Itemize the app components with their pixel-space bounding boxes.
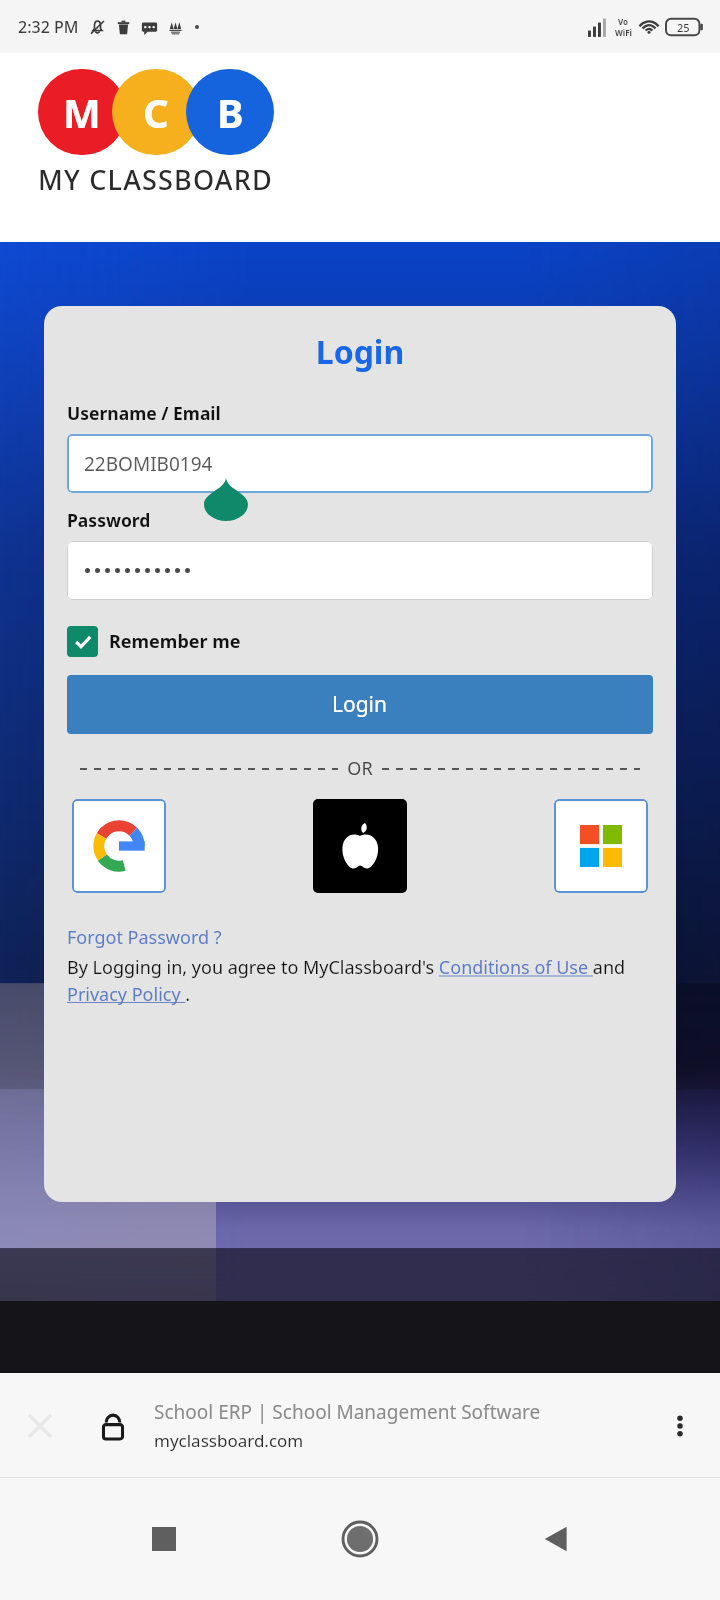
staticText: OR — [338, 756, 382, 781]
button[interactable]: Remember me — [67, 626, 241, 657]
staticText: 2:32 PM — [18, 16, 79, 38]
button[interactable]: 22BOMIB0194 — [67, 434, 653, 493]
staticText: M — [63, 85, 101, 139]
button[interactable]: Home — [328, 1507, 392, 1571]
staticText: Remember me — [109, 629, 241, 654]
button[interactable]: Sign in with Microsoft — [554, 799, 648, 893]
staticText: Vo — [618, 16, 629, 27]
staticText: 22BOMIB0194 — [84, 451, 213, 477]
button[interactable]: More options — [654, 1400, 706, 1452]
button[interactable]: Forgot Password ? — [67, 925, 222, 950]
staticText: Login — [332, 690, 388, 719]
staticText: School ERP | School Management Software — [154, 1399, 541, 1425]
staticText: Password — [67, 508, 151, 532]
button[interactable]: Recents — [132, 1507, 196, 1571]
button[interactable]: Sign in with Apple — [313, 799, 407, 893]
staticText: B — [217, 85, 244, 139]
button[interactable]: Close — [14, 1400, 66, 1452]
button[interactable]: Back — [524, 1507, 588, 1571]
staticText: Username / Email — [67, 401, 221, 425]
staticText: Login — [44, 330, 676, 374]
staticText: C — [143, 85, 169, 139]
staticText: Forgot Password ? — [67, 925, 222, 950]
button[interactable] — [67, 541, 653, 600]
button[interactable]: By Logging in, you agree to MyClassboard… — [67, 955, 653, 1006]
staticText: MY CLASSBOARD — [38, 161, 273, 198]
button[interactable]: Sign in with Google — [72, 799, 166, 893]
button[interactable]: Login — [67, 675, 653, 734]
staticText: myclassboard.com — [154, 1429, 304, 1452]
staticText: WiFi — [615, 27, 632, 38]
staticText: 25 — [677, 20, 690, 35]
